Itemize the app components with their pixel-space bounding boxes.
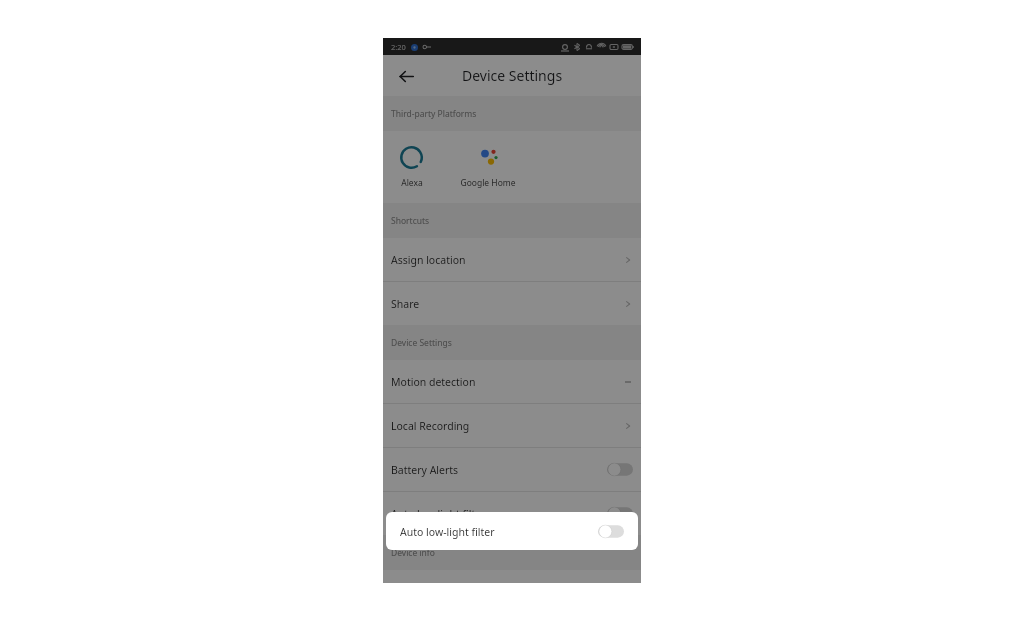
staticText: Auto low-light filter xyxy=(391,507,607,521)
staticText: Auto low-light filter xyxy=(400,525,598,539)
staticText: Assign location xyxy=(391,253,623,267)
button[interactable]: Toggle xyxy=(607,462,633,477)
button[interactable]: Motion detection xyxy=(383,360,641,403)
button[interactable]: Auto low-light filter xyxy=(386,512,638,550)
staticText: Google Home xyxy=(460,177,516,189)
staticText: Third-party Platforms xyxy=(391,108,477,120)
button[interactable]: Battery Alerts xyxy=(383,448,641,491)
button[interactable]: Local Recording xyxy=(383,404,641,447)
staticText: Alexa xyxy=(401,177,423,189)
button[interactable]: Share xyxy=(383,282,641,325)
button[interactable]: Alexa xyxy=(395,143,428,191)
button[interactable]: Back xyxy=(393,63,419,89)
button[interactable]: Toggle xyxy=(607,506,633,521)
staticText: Shortcuts xyxy=(391,215,430,227)
button[interactable]: Assign location xyxy=(383,238,641,281)
staticText: Device info xyxy=(391,547,435,559)
staticText: Battery Alerts xyxy=(391,463,607,477)
staticText: Share xyxy=(391,297,623,311)
staticText: Local Recording xyxy=(391,419,623,433)
staticText: Motion detection xyxy=(391,375,623,389)
staticText: Device Settings xyxy=(391,337,452,349)
button[interactable]: Auto low-light filter xyxy=(383,492,641,535)
button[interactable]: Google Home xyxy=(456,143,520,191)
button[interactable]: Toggle xyxy=(598,524,624,539)
staticText: 2:20 xyxy=(391,42,406,52)
staticText: Device Settings xyxy=(462,66,563,85)
